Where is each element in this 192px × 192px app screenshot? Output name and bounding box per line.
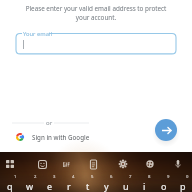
staticText: o [161, 180, 167, 192]
staticText: 8 [148, 174, 151, 180]
button[interactable]: Apps [0, 152, 20, 172]
button[interactable]: 4 [59, 172, 78, 192]
staticText: 9 [167, 174, 170, 180]
button[interactable]: 5 [78, 172, 97, 192]
button[interactable]: Settings [113, 152, 133, 172]
staticText: y [104, 180, 109, 192]
staticText: q [7, 180, 13, 192]
button[interactable]: GIF [57, 152, 77, 172]
staticText: 5 [91, 174, 94, 180]
staticText: 0 [186, 174, 189, 180]
button[interactable]: Your email [16, 30, 176, 55]
button[interactable]: Voice input [168, 152, 188, 172]
button[interactable]: 2 [20, 172, 40, 192]
button[interactable]: 1 [0, 172, 20, 192]
staticText: t [86, 180, 90, 192]
button[interactable]: Sign in with Google [16, 130, 90, 144]
button[interactable]: 9 [154, 172, 173, 192]
staticText: Sign in with Google [32, 133, 90, 141]
staticText: u [123, 180, 129, 192]
button[interactable]: 6 [97, 172, 116, 192]
staticText: e [47, 180, 53, 192]
staticText: 7 [129, 174, 132, 180]
button[interactable]: 0 [173, 172, 192, 192]
staticText: r [67, 180, 71, 192]
staticText: 4 [72, 174, 75, 180]
staticText: i [143, 180, 146, 192]
staticText: Please enter your valid email address to… [24, 4, 168, 22]
staticText: 6 [110, 174, 113, 180]
staticText: p [180, 180, 186, 192]
button[interactable]: 8 [135, 172, 154, 192]
staticText: Your email [23, 30, 52, 38]
button[interactable]: Emoji [32, 152, 52, 172]
staticText: 3 [53, 174, 56, 180]
button[interactable]: Clipboard [83, 152, 103, 172]
staticText: or [46, 119, 53, 127]
staticText: 2 [34, 174, 37, 180]
button[interactable]: 7 [116, 172, 135, 192]
staticText: w [26, 180, 34, 192]
button[interactable]: 3 [40, 172, 59, 192]
button[interactable]: Next [155, 119, 177, 141]
button[interactable]: Theme [140, 152, 160, 172]
staticText: 1 [14, 174, 17, 180]
